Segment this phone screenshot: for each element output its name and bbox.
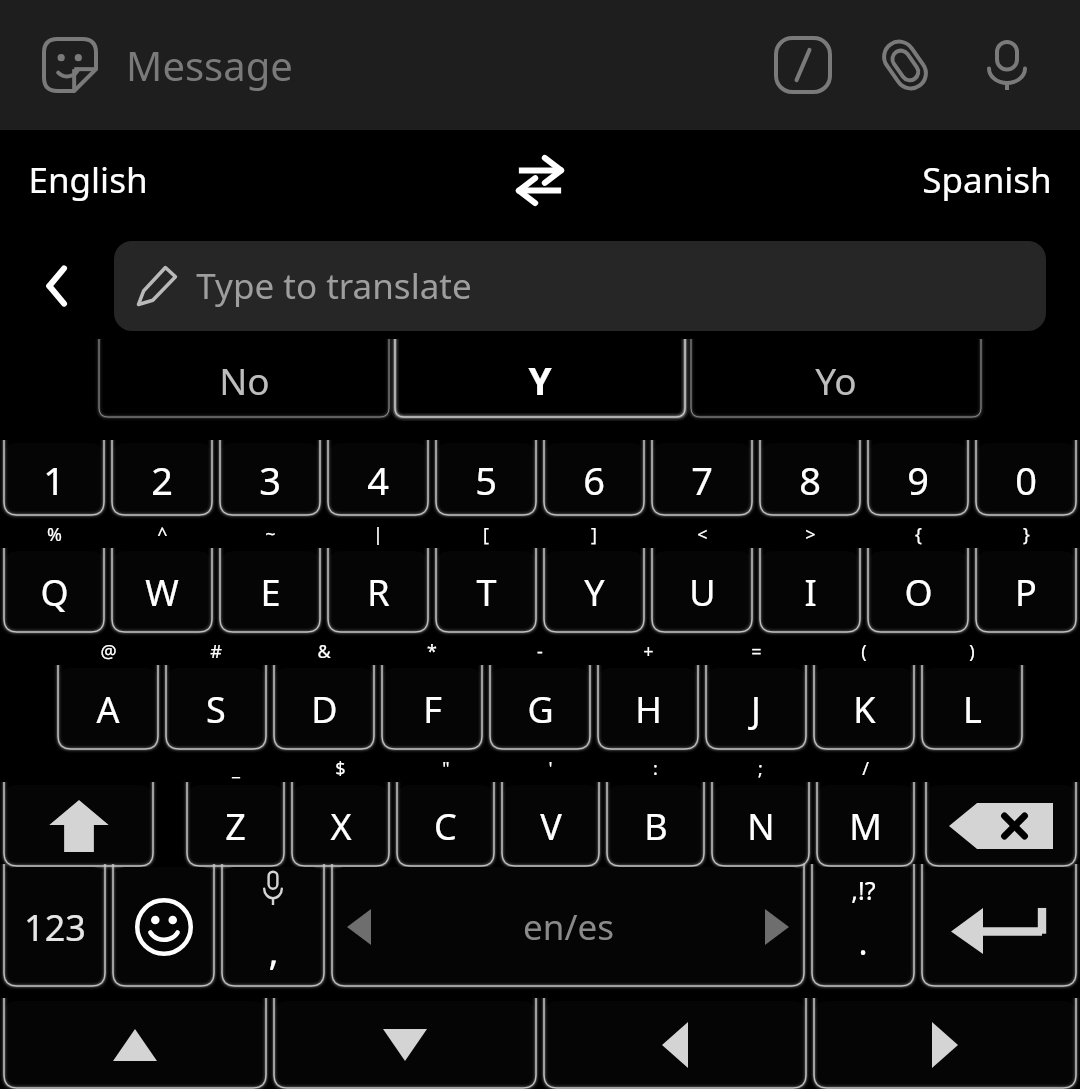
button[interactable]: Voice message [970,28,1044,102]
staticText: I [804,568,817,617]
button[interactable]: 123 [3,867,106,987]
button[interactable]: en/es [331,867,805,987]
button[interactable]: Comma and voice input [221,867,325,987]
staticText: N [747,802,775,851]
staticText: ( [861,639,867,664]
button[interactable]: Backspace [925,785,1077,867]
button[interactable]: Swap languages [505,145,575,215]
button[interactable]: F [381,668,483,750]
button[interactable]: Text formatting [766,28,840,102]
staticText: ' [548,756,553,781]
staticText: $ [335,756,346,781]
button[interactable]: Back [0,230,114,342]
button[interactable]: D [273,668,375,750]
staticText: T [476,568,497,617]
button[interactable]: K [813,668,915,750]
staticText: ; [758,756,763,781]
button[interactable]: J [705,668,807,750]
button[interactable]: Move down [273,1001,537,1089]
button[interactable]: Spanish [914,148,1060,212]
button[interactable]: Q [3,551,105,633]
button[interactable]: Emoji [112,867,215,987]
button[interactable]: C [396,785,495,867]
button[interactable]: E [219,551,321,633]
staticText: + [643,639,654,664]
button[interactable]: 0 [975,443,1077,516]
button[interactable]: 2 [111,443,213,516]
button[interactable]: 7 [651,443,753,516]
button[interactable]: Period and punctuation [811,867,915,987]
button[interactable]: Y [394,342,686,418]
button[interactable]: 8 [759,443,861,516]
button[interactable]: H [597,668,699,750]
button[interactable]: Move right [813,1001,1077,1089]
button[interactable]: 5 [435,443,537,516]
button[interactable]: No [98,342,390,418]
button[interactable]: Yo [690,342,982,418]
staticText: E [260,568,281,617]
button[interactable]: O [867,551,969,633]
staticText: G [527,685,554,734]
button[interactable]: R [327,551,429,633]
button[interactable]: S [165,668,267,750]
staticText: ^ [157,522,168,547]
staticText: H [635,685,662,734]
button[interactable]: 9 [867,443,969,516]
button[interactable]: Type to translate [114,241,1046,331]
staticText: D [311,685,338,734]
staticText: > [805,522,816,547]
button[interactable]: X [291,785,390,867]
button[interactable]: N [711,785,810,867]
button[interactable]: Move up [3,1001,267,1089]
button[interactable]: Stickers [40,35,100,95]
staticText: 123 [24,903,86,952]
button[interactable]: 6 [543,443,645,516]
button[interactable]: Z [186,785,285,867]
button[interactable]: Y [543,551,645,633]
button[interactable]: L [921,668,1023,750]
staticText: * [427,639,437,664]
staticText: ) [969,639,975,664]
staticText: Spanish [922,156,1052,204]
button[interactable]: Enter [921,867,1077,987]
button[interactable]: 1 [3,443,105,516]
button[interactable]: P [975,551,1077,633]
staticText: U [689,568,716,617]
button[interactable]: U [651,551,753,633]
button[interactable]: M [816,785,915,867]
staticText: | [373,522,383,547]
staticText: M [849,802,882,851]
button[interactable]: Move left [543,1001,807,1089]
staticText: Y [528,355,552,405]
staticText: 4 [367,454,389,506]
staticText: R [367,568,390,617]
staticText: 1 [43,454,65,506]
staticText: English [28,156,148,204]
staticText: 0 [1015,454,1037,506]
button[interactable]: Shift [3,785,154,867]
staticText: V [540,802,562,851]
button[interactable]: 3 [219,443,321,516]
button[interactable]: B [606,785,705,867]
staticText: 3 [259,454,281,506]
staticText: 8 [799,454,821,506]
button[interactable]: 4 [327,443,429,516]
button[interactable]: V [501,785,600,867]
button[interactable]: A [57,668,159,750]
staticText: en/es [523,903,614,951]
button[interactable]: G [489,668,591,750]
button[interactable]: W [111,551,213,633]
staticText: S [206,685,226,734]
staticText: ] [591,522,597,547]
staticText: Z [225,802,246,851]
staticText: { [915,522,922,547]
staticText: " [442,756,450,781]
staticText: K [853,685,876,734]
staticText: / [862,756,869,781]
staticText: = [751,639,762,664]
staticText: A [96,685,120,734]
button[interactable]: T [435,551,537,633]
button[interactable]: I [759,551,861,633]
button[interactable]: English [20,148,156,212]
button[interactable]: Attach file [868,28,942,102]
